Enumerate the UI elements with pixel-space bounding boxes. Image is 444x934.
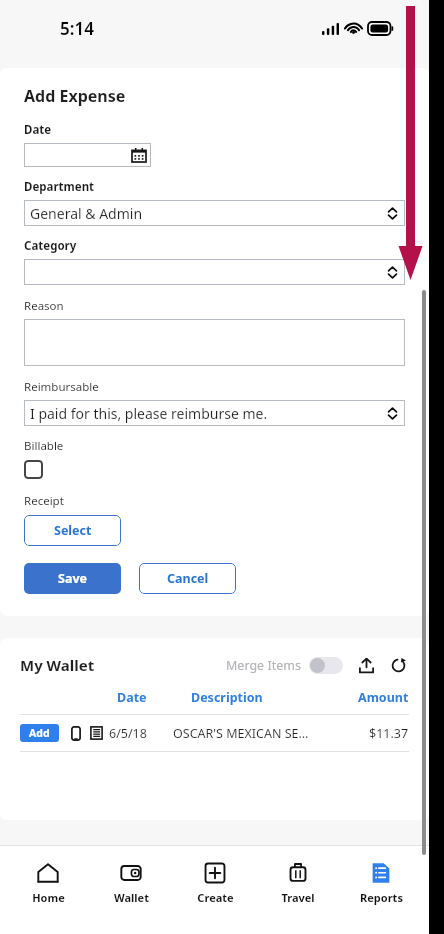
staticText: Create [197,890,234,905]
staticText: My Wallet [20,655,95,675]
button[interactable]: Home [13,857,83,909]
staticText: $11.37 [369,725,409,742]
staticText: Category [24,238,77,254]
button[interactable]: Save [24,563,121,594]
staticText: Travel [281,890,315,905]
button[interactable]: Add [20,715,409,751]
staticText: General & Admin [30,204,387,223]
staticText: I paid for this, please reimburse me. [30,404,387,423]
staticText: OSCAR'S MEXICAN SE… [173,725,309,742]
staticText: Date [117,689,147,706]
button[interactable]: Billable [24,460,43,479]
staticText: Billable [24,438,64,454]
staticText: Date [24,122,52,138]
staticText: Add Expense [24,85,126,107]
staticText: Save [58,570,87,587]
staticText: Receipt [24,493,64,509]
button[interactable]: Create [180,857,250,909]
button[interactable]: Reports [346,857,416,909]
button[interactable]: Pick date [24,143,151,167]
staticText: Home [32,890,65,905]
button[interactable]: Cancel [139,563,236,594]
button[interactable]: Travel [263,857,333,909]
staticText: 5:14 [60,17,94,40]
button[interactable]: Reason [24,319,405,366]
staticText: 6/5/18 [109,725,147,742]
staticText: Reimbursable [24,379,99,395]
staticText: Wallet [114,890,149,905]
button[interactable]: Select [24,515,121,546]
button[interactable]: Merge items toggle [309,657,343,674]
staticText: Reports [360,890,403,905]
staticText: Cancel [167,570,209,587]
button[interactable]: Wallet [96,857,166,909]
staticText: Select [54,522,92,539]
staticText: Description [191,689,263,706]
button[interactable]: I paid for this, please reimburse me. [24,400,405,426]
button[interactable]: Refresh [387,654,409,676]
staticText: Amount [358,689,409,706]
staticText: Department [24,179,95,195]
staticText: Merge Items [226,657,301,674]
button[interactable] [24,259,405,285]
button[interactable]: General & Admin [24,200,405,226]
button[interactable]: Upload [355,654,377,676]
staticText: Reason [24,298,64,314]
staticText: Add [29,726,50,740]
